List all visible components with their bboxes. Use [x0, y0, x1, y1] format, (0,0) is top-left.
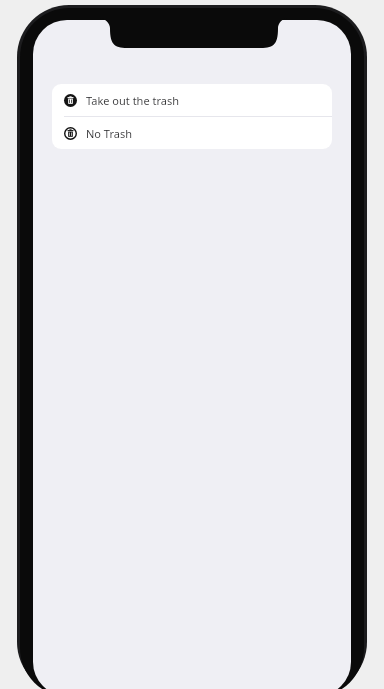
other: No trash	[64, 127, 77, 140]
button[interactable]: No trash	[52, 117, 332, 149]
staticText: Take out the trash	[86, 93, 179, 108]
other: Take out the trash	[64, 94, 77, 107]
staticText: No Trash	[86, 126, 133, 141]
button[interactable]: Take out the trash	[52, 84, 332, 116]
